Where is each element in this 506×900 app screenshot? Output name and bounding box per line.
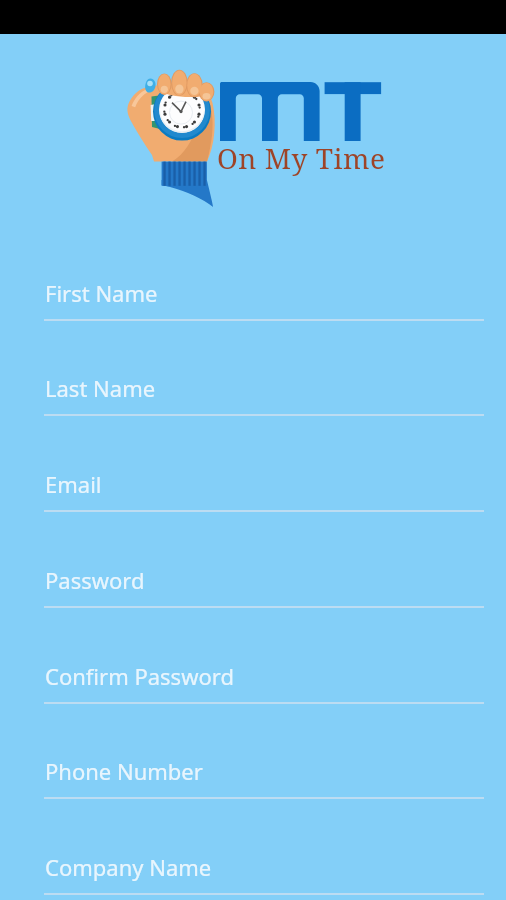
- button[interactable]: Phone Number: [0, 751, 506, 847]
- button[interactable]: Last Name: [0, 368, 506, 464]
- button[interactable]: Confirm Password: [0, 656, 506, 752]
- staticText: Last Name: [45, 373, 156, 403]
- staticText: Confirm Password: [45, 661, 234, 691]
- button[interactable]: First Name: [0, 273, 506, 369]
- staticText: On My Time: [217, 139, 386, 177]
- staticText: First Name: [45, 278, 158, 308]
- button[interactable]: Company Name: [0, 847, 506, 900]
- button[interactable]: Password: [0, 560, 506, 656]
- staticText: Email: [45, 469, 102, 499]
- staticText: Phone Number: [45, 756, 203, 786]
- staticText: Password: [45, 565, 145, 595]
- staticText: Company Name: [45, 852, 212, 882]
- button[interactable]: Email: [0, 464, 506, 560]
